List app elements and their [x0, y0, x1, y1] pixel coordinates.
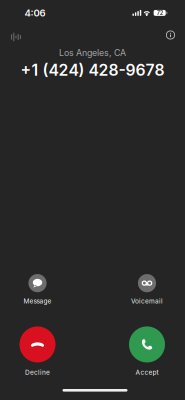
- button[interactable]: Voicemail: [116, 274, 178, 305]
- staticText: Los Angeles, CA: [59, 47, 126, 58]
- button[interactable]: Audio routing: [6, 27, 26, 47]
- staticText: Voicemail: [131, 297, 163, 305]
- button[interactable]: Decline: [6, 326, 68, 376]
- staticText: +1 (424) 428-9678: [20, 60, 164, 79]
- staticText: 4:06: [24, 7, 45, 19]
- staticText: 72: [157, 9, 163, 16]
- staticText: Decline: [25, 368, 50, 376]
- button[interactable]: Accept: [116, 326, 178, 376]
- button[interactable]: Call details: [160, 25, 180, 45]
- staticText: Message: [23, 297, 51, 305]
- staticText: Accept: [135, 368, 158, 376]
- button[interactable]: Message: [6, 274, 68, 305]
